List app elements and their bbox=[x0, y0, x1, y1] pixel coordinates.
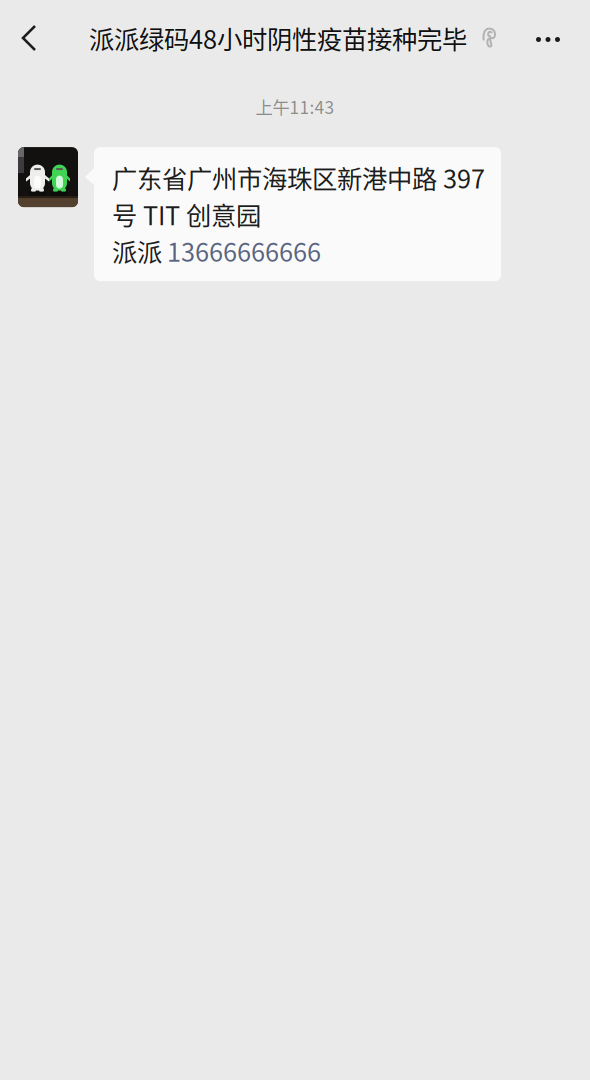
button[interactable]: More bbox=[520, 0, 590, 76]
button[interactable]: Earpiece playback bbox=[467, 0, 509, 76]
staticText: 派派 bbox=[112, 232, 162, 269]
button[interactable]: Back bbox=[0, 0, 89, 76]
staticText: 13666666666 bbox=[167, 232, 321, 269]
staticText: 上午11:43 bbox=[255, 94, 334, 119]
button[interactable]: 广东省广州市海珠区新港中路 397 号 TIT 创意园 bbox=[80, 147, 501, 281]
button[interactable]: 派派 profile photo bbox=[0, 147, 80, 207]
staticText: 广东省广州市海珠区新港中路 397 号 TIT 创意园 bbox=[112, 159, 485, 232]
staticText: 派派绿码48小时阴性疫苗接种完毕 bbox=[89, 20, 467, 56]
